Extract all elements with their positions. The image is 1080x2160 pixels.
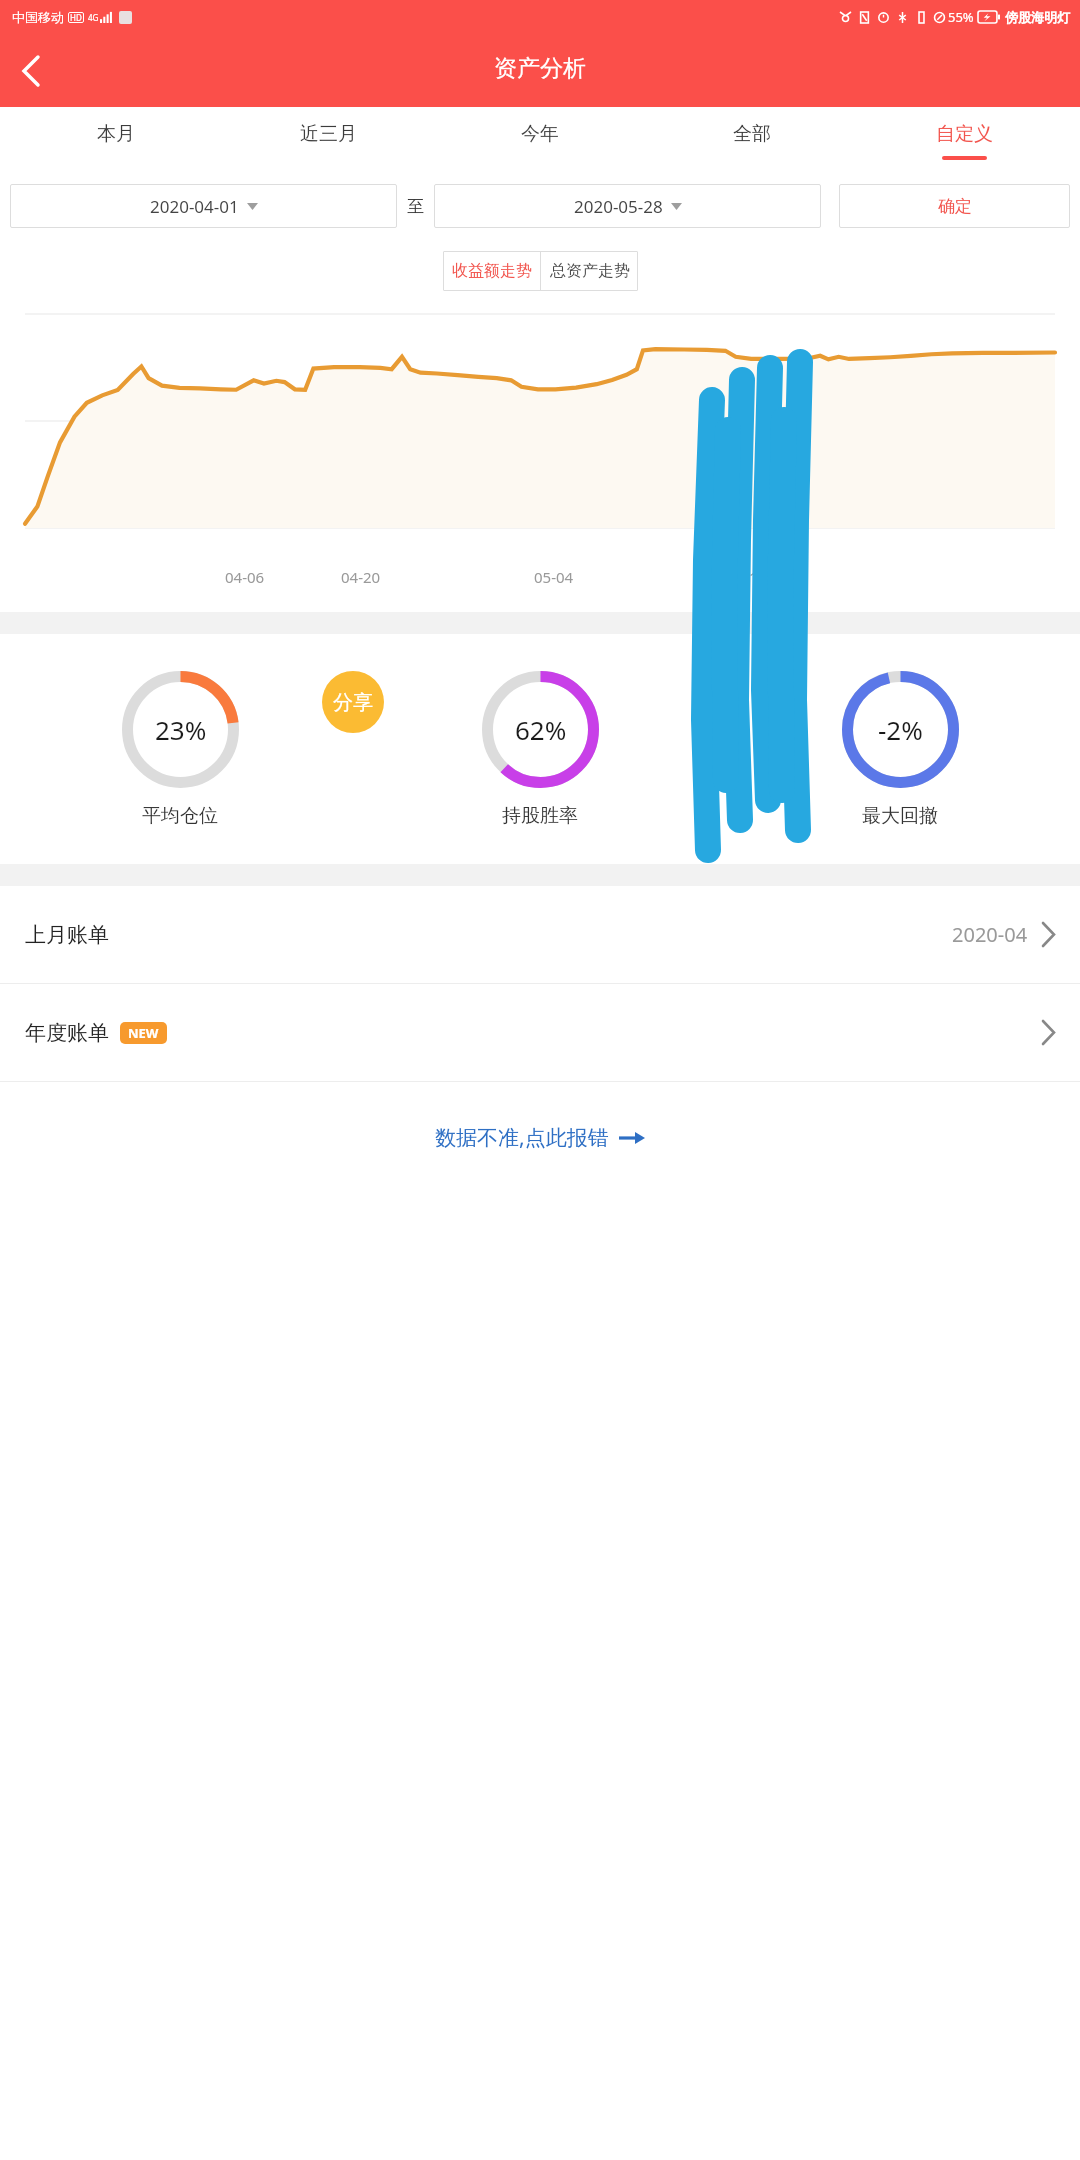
staticText: 近三月 [300, 122, 357, 146]
staticText: 05-04 [534, 567, 574, 587]
button[interactable]: 近三月 [222, 107, 434, 156]
button[interactable]: 上月账单 [0, 886, 1080, 983]
staticText: 2020-04-01 [150, 195, 239, 218]
staticText: 确定 [938, 196, 972, 217]
staticText: 全部 [733, 122, 771, 146]
staticText: 2020-04 [952, 921, 1028, 948]
button[interactable]: 数据不准,点此报错 [0, 1082, 1080, 1192]
staticText: 总资产走势 [550, 261, 630, 281]
staticText: 数据不准,点此报错 [435, 1123, 609, 1152]
button[interactable]: 本月 [10, 107, 222, 156]
staticText: 持股胜率 [502, 804, 578, 828]
staticText: -2% [878, 712, 923, 747]
staticText: 最大回撤 [862, 804, 938, 828]
staticText: 23% [155, 712, 207, 747]
button[interactable]: 2020-05-28 [434, 184, 821, 228]
button[interactable]: -2% [720, 671, 1080, 828]
button[interactable]: 年度账单 [0, 984, 1080, 1081]
staticText: HD [70, 12, 82, 23]
staticText: 年度账单 [25, 1020, 109, 1046]
staticText: 上月账单 [25, 922, 109, 948]
staticText: 平均仓位 [142, 804, 218, 828]
staticText: 至 [407, 196, 424, 217]
staticText: 4G [88, 12, 99, 23]
button[interactable]: Back [6, 46, 56, 96]
staticText: 本月 [97, 122, 135, 146]
staticText: 资产分析 [494, 54, 586, 83]
staticText: NEW [128, 1024, 159, 1042]
staticText: 55% [948, 8, 974, 26]
staticText: 2020-05-28 [574, 195, 663, 218]
button[interactable]: 今年 [434, 107, 646, 156]
staticText: 今年 [521, 122, 559, 146]
staticText: 62% [515, 712, 567, 747]
staticText: 傍股海明灯 [1005, 9, 1070, 25]
button[interactable]: 23% [0, 671, 360, 828]
button[interactable]: 2020-04-01 [10, 184, 397, 228]
staticText: 04-06 [225, 567, 265, 587]
staticText: 04-20 [341, 567, 381, 587]
staticText: 05-18 [727, 567, 767, 587]
staticText: 收益额走势 [452, 261, 532, 281]
button[interactable]: 自定义 [858, 107, 1070, 160]
staticText: 分享 [333, 690, 373, 715]
button[interactable]: 全部 [646, 107, 858, 156]
button[interactable]: 收益额走势 [443, 251, 540, 291]
button[interactable]: 分享 [322, 671, 384, 733]
button[interactable]: 总资产走势 [541, 251, 638, 291]
button[interactable]: 确定 [839, 184, 1070, 228]
staticText: 中国移动 [12, 9, 64, 25]
staticText: 自定义 [936, 122, 993, 146]
button[interactable]: 62% [360, 671, 720, 828]
